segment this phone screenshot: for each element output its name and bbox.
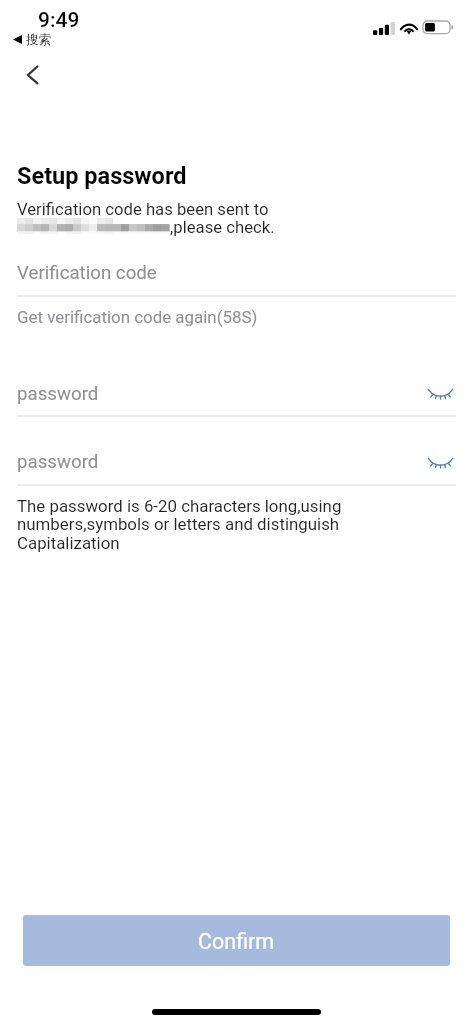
staticText: Get verification code again(58S) <box>17 307 258 327</box>
button[interactable]: Show password <box>423 436 457 470</box>
staticText: 搜索 <box>26 32 51 48</box>
button[interactable]: Back <box>11 53 55 97</box>
staticText: Verification code <box>17 262 157 284</box>
button[interactable]: Show password <box>423 367 457 401</box>
staticText: ,please check. <box>170 218 275 238</box>
button[interactable]: Get verification code again(58S) <box>17 307 258 327</box>
staticText: 9:49 <box>38 8 80 33</box>
staticText: Setup password <box>17 162 187 190</box>
button[interactable]: Confirm <box>23 915 450 966</box>
staticText: The password is 6-20 characters long,usi… <box>17 496 369 553</box>
staticText: password <box>17 383 99 405</box>
staticText: Verification code has been sent to <box>17 200 269 220</box>
staticText: password <box>17 451 99 473</box>
staticText: Confirm <box>198 929 275 954</box>
